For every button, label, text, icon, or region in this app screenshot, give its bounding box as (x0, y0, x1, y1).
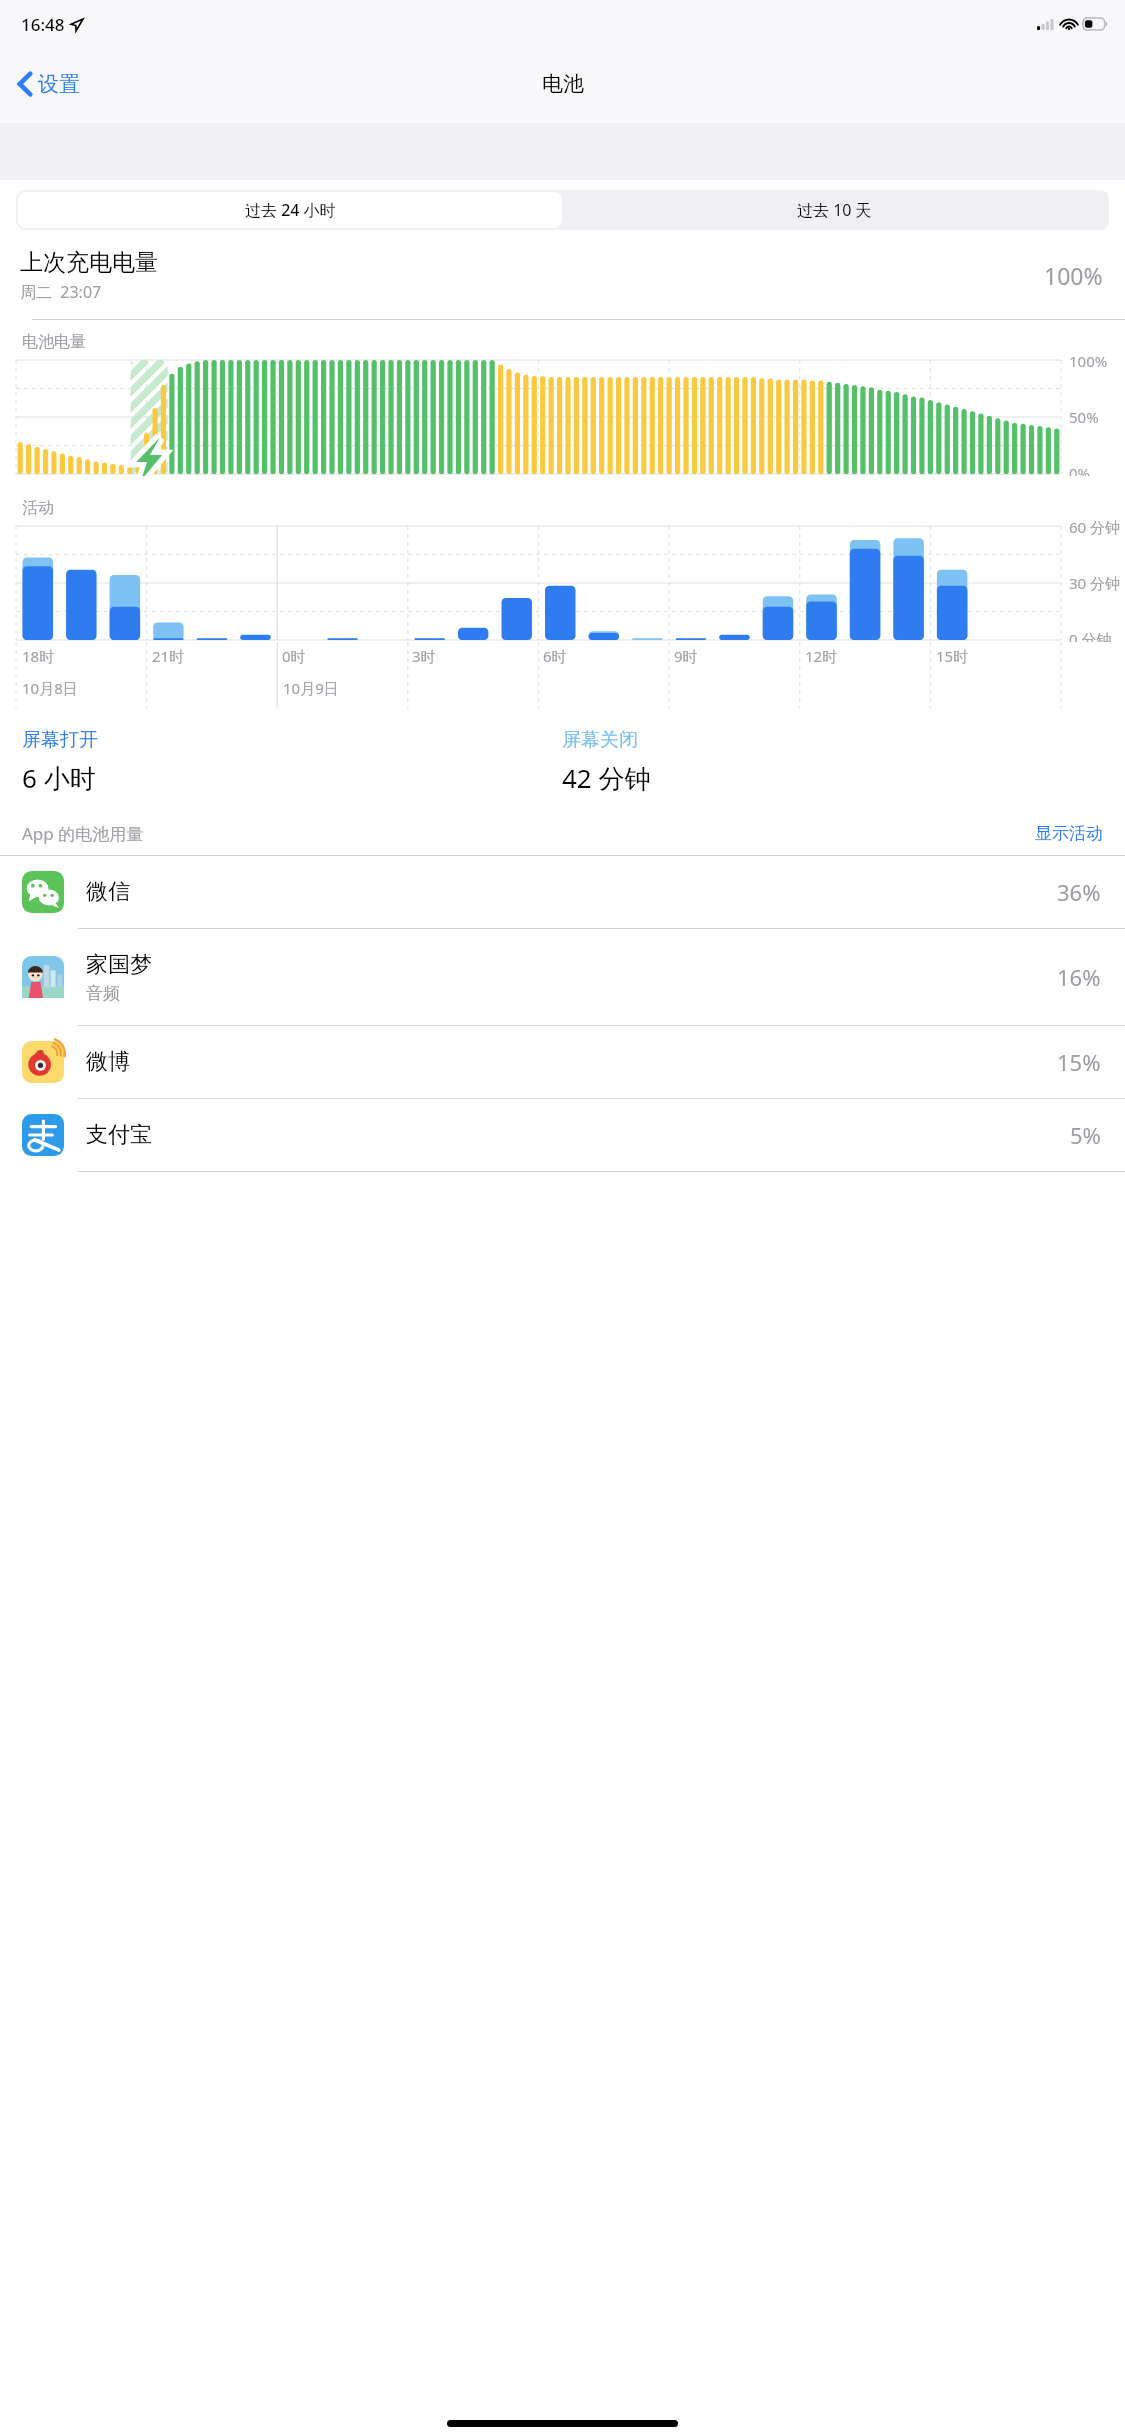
button[interactable]: 过去 24 小时 (18, 192, 562, 228)
staticText: 屏幕关闭 (562, 728, 638, 752)
staticText: 100% (1044, 260, 1103, 291)
staticText: 0时 (282, 646, 306, 666)
staticText: 21时 (152, 646, 185, 666)
staticText: 家国梦 (86, 951, 152, 979)
button[interactable]: 微博 (0, 1026, 1125, 1098)
staticText: 10月8日 (22, 678, 78, 698)
staticText: App 的电池用量 (22, 822, 1035, 845)
staticText: 42 分钟 (562, 760, 651, 796)
staticText: 0% (1069, 463, 1091, 483)
staticText: 音频 (86, 983, 120, 1004)
staticText: 显示活动 (1035, 823, 1103, 844)
staticText: 周二 23:07 (20, 281, 102, 303)
staticText: 0 分钟 (1069, 629, 1112, 649)
button[interactable]: 显示活动 (1035, 823, 1103, 844)
staticText: 上次充电电量 (20, 248, 158, 277)
staticText: 36% (1057, 877, 1101, 907)
staticText: 12时 (805, 646, 838, 666)
button[interactable]: 设置 (13, 65, 85, 103)
staticText: 100% (1069, 351, 1108, 371)
button[interactable]: 家国梦 (0, 929, 1125, 1025)
staticText: 16% (1057, 962, 1101, 992)
staticText: 活动 (22, 498, 54, 518)
button[interactable]: 微信 (0, 856, 1125, 928)
staticText: 15% (1057, 1047, 1101, 1077)
staticText: 16:48 (21, 13, 65, 36)
staticText: 3时 (412, 646, 436, 666)
staticText: 电池电量 (22, 332, 86, 352)
staticText: 5% (1070, 1120, 1101, 1150)
button[interactable]: 过去 10 天 (562, 192, 1107, 228)
staticText: 过去 10 天 (797, 199, 872, 221)
staticText: 微博 (86, 1048, 130, 1076)
staticText: 60 分钟 (1069, 517, 1121, 537)
staticText: 电池 (542, 71, 584, 97)
staticText: 微信 (86, 878, 130, 906)
staticText: 30 分钟 (1069, 573, 1121, 593)
staticText: 支付宝 (86, 1121, 152, 1149)
button[interactable]: 支付宝 (0, 1099, 1125, 1171)
staticText: 15时 (936, 646, 969, 666)
staticText: 6时 (543, 646, 567, 666)
staticText: 过去 24 小时 (245, 199, 336, 221)
staticText: 9时 (674, 646, 698, 666)
staticText: 屏幕打开 (22, 728, 98, 752)
staticText: 设置 (38, 71, 80, 97)
staticText: 10月9日 (283, 678, 339, 698)
staticText: 6 小时 (22, 760, 96, 796)
staticText: 18时 (22, 646, 55, 666)
staticText: 50% (1069, 407, 1099, 427)
